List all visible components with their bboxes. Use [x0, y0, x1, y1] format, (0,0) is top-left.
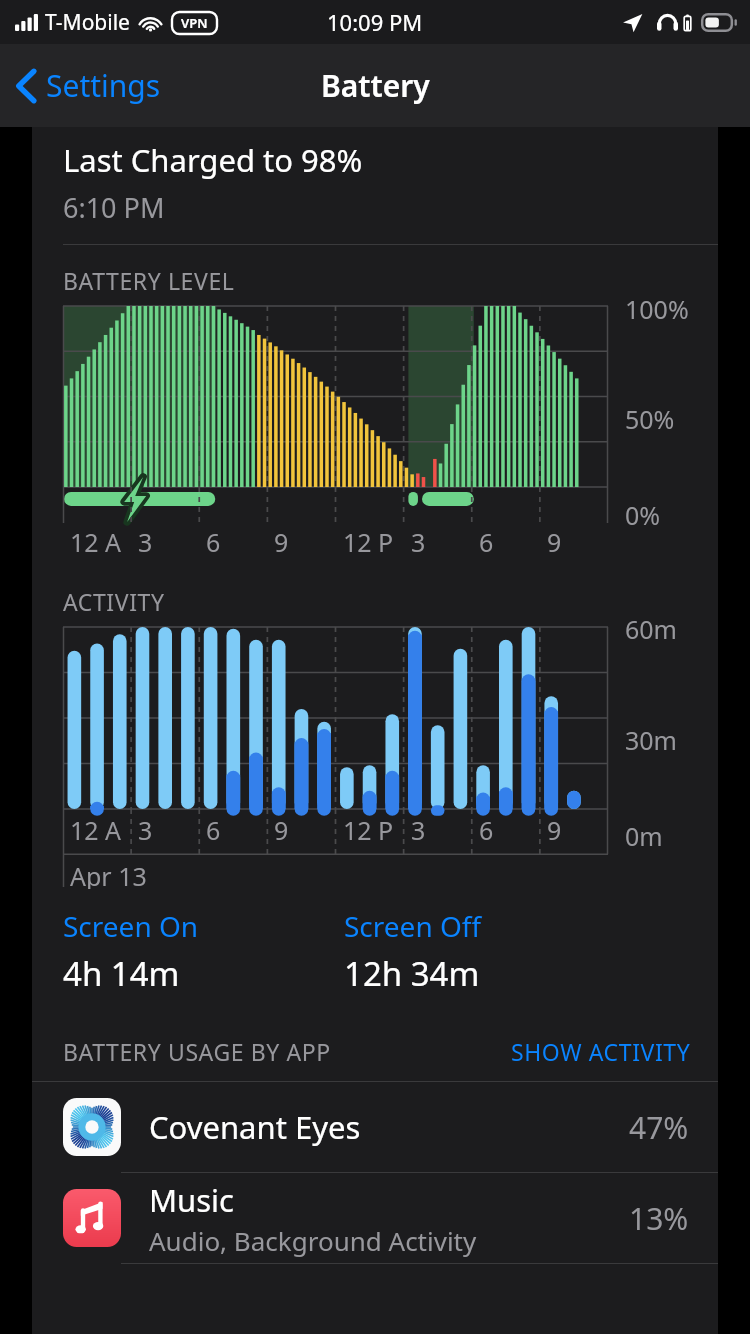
staticText: Audio, Background Activity	[149, 1223, 477, 1258]
staticText: 9	[547, 525, 562, 559]
staticText: SHOW ACTIVITY	[511, 1036, 691, 1067]
button[interactable]: Covenant Eyes	[32, 1082, 718, 1172]
staticText: 9	[274, 813, 289, 847]
staticText: 12 A	[70, 525, 122, 559]
staticText: BATTERY LEVEL	[63, 265, 235, 296]
staticText: Screen Off	[344, 907, 482, 945]
staticText: Screen On	[63, 907, 199, 945]
staticText: 12 P	[343, 813, 394, 847]
staticText: Covenant Eyes	[149, 1106, 361, 1148]
other: Music	[63, 1189, 121, 1247]
staticText: 13%	[629, 1198, 689, 1239]
staticText: 60m	[625, 612, 677, 646]
staticText: ACTIVITY	[63, 586, 165, 617]
staticText: 47%	[629, 1107, 689, 1148]
staticText: 3	[138, 813, 153, 847]
staticText: BATTERY USAGE BY APP	[63, 1036, 331, 1067]
staticText: Settings	[46, 65, 161, 106]
staticText: Last Charged to 98%	[63, 139, 363, 181]
button[interactable]: Music	[32, 1173, 718, 1263]
staticText: VPN	[181, 14, 208, 32]
button[interactable]: SHOW ACTIVITY	[511, 1036, 691, 1067]
button[interactable]: Settings	[8, 57, 169, 114]
staticText: 6:10 PM	[63, 189, 165, 226]
staticText: Battery	[321, 65, 430, 106]
staticText: 12 P	[343, 525, 394, 559]
staticText: 6	[206, 813, 221, 847]
staticText: 0m	[625, 819, 663, 853]
staticText: 30m	[625, 723, 677, 757]
staticText: 9	[274, 525, 289, 559]
staticText: 4h 14m	[63, 951, 180, 996]
staticText: 6	[479, 525, 494, 559]
staticText: 9	[547, 813, 562, 847]
staticText: 3	[411, 813, 426, 847]
staticText: 10:09 PM	[327, 7, 423, 37]
staticText: 100%	[625, 292, 689, 326]
staticText: T-Mobile	[45, 8, 130, 37]
staticText: Music	[149, 1179, 235, 1221]
staticText: 6	[206, 525, 221, 559]
staticText: 12h 34m	[344, 951, 480, 996]
staticText: 6	[479, 813, 494, 847]
staticText: Apr 13	[70, 859, 147, 889]
other: Covenant Eyes	[63, 1098, 121, 1156]
staticText: 3	[138, 525, 153, 559]
staticText: 3	[411, 525, 426, 559]
staticText: 50%	[625, 402, 675, 436]
staticText: 12 A	[70, 813, 122, 847]
staticText: 0%	[625, 498, 661, 532]
